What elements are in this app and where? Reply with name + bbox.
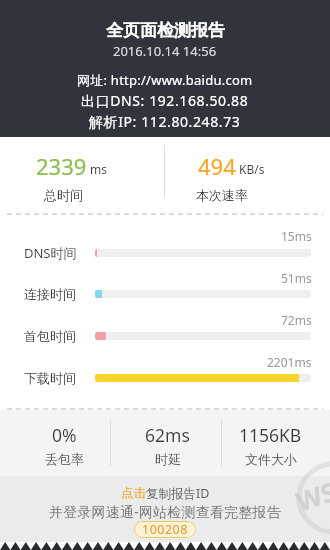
staticText: 2339 [36,151,87,181]
staticText: 文件大小 [245,451,297,467]
staticText: 时延 [155,451,181,467]
staticText: WS [292,473,330,518]
button[interactable]: 2339 [0,151,144,203]
staticText: KB/s [236,161,265,177]
staticText: 0% [52,423,77,447]
staticText: 出口DNS: 192.168.50.88 [81,91,249,110]
button[interactable]: 100208 [134,521,196,538]
button[interactable]: 点击 [121,485,210,502]
button[interactable]: 0% [12,423,116,467]
staticText: 并登录网速通-网站检测查看完整报告 [49,502,281,521]
staticText: 2016.10.14 14:56 [113,42,217,60]
staticText: 62ms [145,423,190,447]
staticText: 连接时间 [24,286,76,302]
button[interactable]: 51ms [0,270,330,312]
button[interactable]: 72ms [0,312,330,354]
staticText: 解析IP: 112.80.248.73 [89,112,241,131]
staticText: 15ms [281,228,312,244]
button[interactable]: 2201ms [0,354,330,396]
staticText: 全页面检测报告 [106,20,225,41]
staticText: 51ms [281,270,312,286]
button[interactable]: 494 [165,151,297,203]
button[interactable]: 62ms [116,423,219,467]
staticText: 总时间 [44,187,83,203]
staticText: 72ms [281,312,312,328]
staticText: 2201ms [267,354,312,370]
staticText: 494 [198,151,236,181]
staticText: 丢包率 [45,451,84,467]
button[interactable]: 1156KB [219,423,322,467]
staticText: 点击 [121,485,146,501]
staticText: DNS时间 [24,244,77,262]
button[interactable]: 15ms [0,228,330,270]
staticText: 1156KB [239,423,302,447]
staticText: 本次速率 [196,187,248,203]
staticText: 网址: http://www.baidu.com [77,71,253,89]
staticText: 复制报告ID [146,485,210,502]
staticText: 100208 [142,521,188,538]
staticText: ms [87,161,108,177]
staticText: 首包时间 [24,328,76,344]
staticText: 下载时间 [24,370,76,386]
